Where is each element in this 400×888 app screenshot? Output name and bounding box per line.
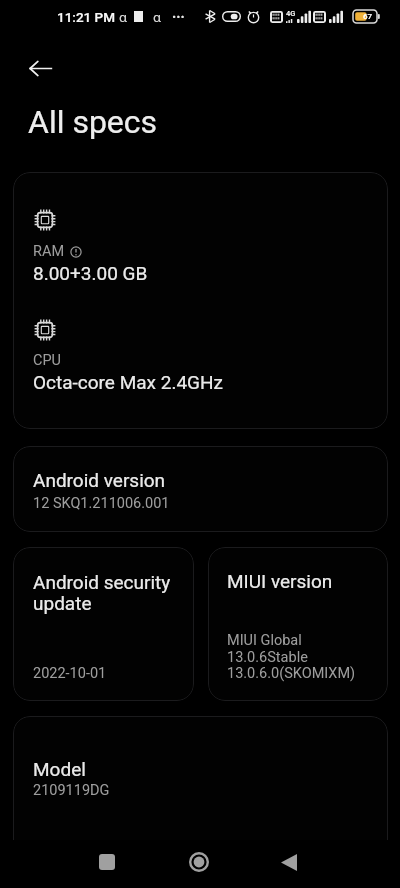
staticText: MIUI version <box>227 570 333 592</box>
staticText: ··· <box>172 9 185 25</box>
staticText: CPU <box>33 352 61 369</box>
staticText: ɑ <box>153 8 161 26</box>
staticText: 8.00+3.00 GB <box>33 262 148 284</box>
staticText: 4G <box>286 9 296 18</box>
button[interactable]: Model <box>13 716 388 840</box>
staticText: Model <box>33 758 86 780</box>
staticText: Android security update <box>33 571 171 615</box>
staticText: 11:21 PM <box>57 9 116 25</box>
staticText: Octa-core Max 2.4GHz <box>33 371 223 393</box>
staticText: Android version <box>33 469 166 491</box>
button[interactable]: MIUI version <box>208 547 388 701</box>
staticText: RAM <box>33 243 65 260</box>
button[interactable]: Android security update <box>13 547 194 701</box>
staticText: All specs <box>28 103 158 141</box>
button[interactable]: RAM <box>13 172 388 429</box>
button[interactable]: Navigate up <box>19 46 63 90</box>
staticText: 2022-10-01 <box>33 665 107 682</box>
button[interactable]: Home <box>175 838 223 886</box>
staticText: 67 <box>363 12 373 21</box>
staticText: ɑ <box>119 8 127 26</box>
staticText: 12 SKQ1.211006.001 <box>33 495 170 512</box>
button[interactable]: Back <box>265 838 313 886</box>
button[interactable]: Recent apps <box>83 838 131 886</box>
staticText: MIUI Global 13.0.6Stable 13.0.6.0(SKOMIX… <box>227 632 356 681</box>
staticText: 2109119DG <box>33 782 110 799</box>
button[interactable]: Android version <box>13 446 388 532</box>
